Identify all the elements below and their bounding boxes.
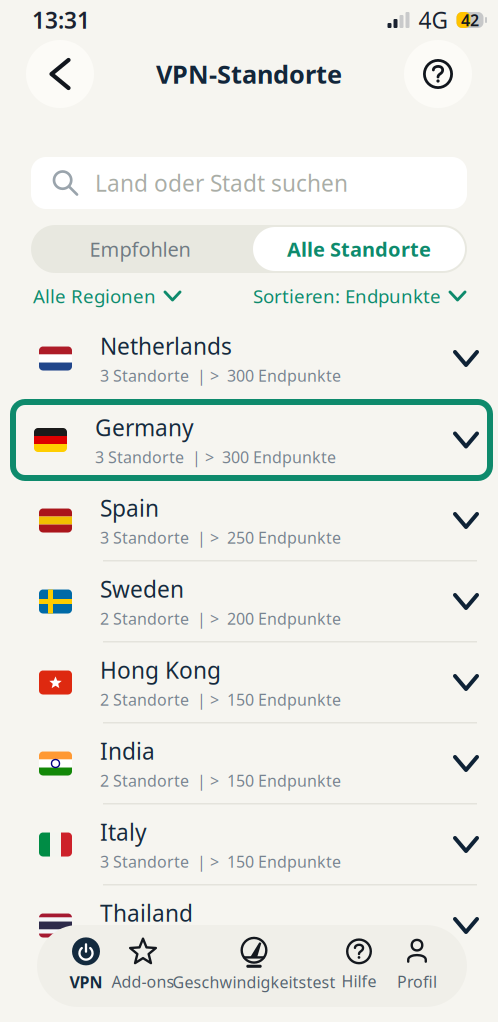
staticText: Italy <box>100 817 147 847</box>
staticText: 2 Standorte | > 100 Endpunkte <box>100 932 341 953</box>
button[interactable]: Land oder Stadt suchen <box>31 157 467 209</box>
button[interactable]: Sortieren: Endpunkte <box>253 284 465 308</box>
staticText: 2 Standorte | > 200 Endpunkte <box>100 608 341 629</box>
button[interactable]: Geschwindigkeitstest <box>37 925 467 1007</box>
button[interactable]: Hilfe <box>37 925 467 1007</box>
staticText: Hong Kong <box>100 655 221 685</box>
button[interactable]: Back <box>26 40 94 108</box>
button[interactable]: Empfohlen <box>31 225 249 273</box>
button[interactable]: Add-ons <box>37 925 467 1007</box>
button[interactable]: Profil <box>37 925 467 1007</box>
button[interactable]: Thailand <box>0 885 498 966</box>
button[interactable]: Alle Standorte <box>253 227 465 271</box>
button[interactable]: Germany <box>0 399 498 481</box>
staticText: Land oder Stadt suchen <box>95 168 348 198</box>
button[interactable]: Italy <box>0 804 498 885</box>
staticText: 3 Standorte | > 150 Endpunkte <box>100 851 341 872</box>
button[interactable]: Sweden <box>0 561 498 642</box>
staticText: Thailand <box>100 898 193 928</box>
staticText: 3 Standorte | > 250 Endpunkte <box>100 527 341 548</box>
staticText: 2 Standorte | > 150 Endpunkte <box>100 770 341 791</box>
staticText: Alle Standorte <box>287 236 431 262</box>
button[interactable]: Spain <box>0 480 498 561</box>
staticText: Sortieren: Endpunkte <box>253 284 441 308</box>
staticText: Sweden <box>100 574 184 604</box>
staticText: Profil <box>397 971 437 992</box>
button[interactable]: Netherlands <box>0 318 498 399</box>
button[interactable]: Help <box>404 40 472 108</box>
staticText: Add-ons <box>111 971 174 992</box>
staticText: 13:31 <box>32 5 90 35</box>
staticText: India <box>100 736 155 766</box>
staticText: 4G <box>418 5 448 35</box>
staticText: VPN-Standorte <box>156 57 342 91</box>
staticText: 42 <box>461 9 479 31</box>
staticText: Germany <box>95 412 194 442</box>
staticText: Geschwindigkeitstest <box>172 971 335 993</box>
staticText: 3 Standorte | > 300 Endpunkte <box>100 365 341 386</box>
button[interactable]: India <box>0 723 498 804</box>
staticText: 3 Standorte | > 300 Endpunkte <box>95 446 336 468</box>
staticText: Spain <box>100 493 159 523</box>
staticText: Netherlands <box>100 331 232 361</box>
staticText: Hilfe <box>341 970 376 992</box>
button[interactable]: Alle Regionen <box>33 284 180 308</box>
button[interactable]: Hong Kong <box>0 642 498 723</box>
staticText: Empfohlen <box>89 236 190 262</box>
staticText: VPN <box>69 971 102 993</box>
button[interactable]: VPN <box>37 925 467 1007</box>
staticText: 2 Standorte | > 150 Endpunkte <box>100 689 341 710</box>
staticText: Alle Regionen <box>33 284 156 308</box>
